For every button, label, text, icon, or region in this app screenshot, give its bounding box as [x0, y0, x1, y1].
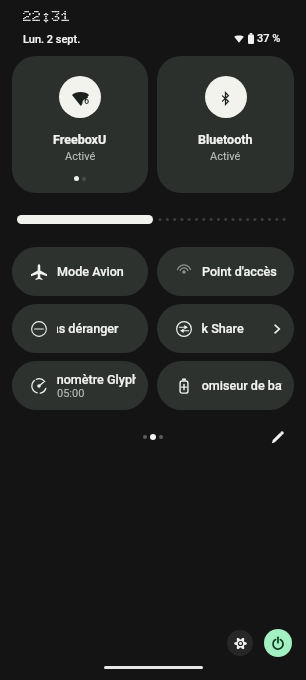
button[interactable]: Bluetooth [157, 56, 294, 193]
button[interactable]: Modifier [266, 427, 288, 447]
button[interactable]: Quick Share [157, 304, 294, 353]
staticText: 6 [84, 96, 90, 107]
staticText: 05:00 [57, 387, 85, 400]
button[interactable]: Paramètres [227, 630, 253, 656]
button[interactable]: Économiseur de batterie [157, 361, 294, 410]
staticText: Quick Share [202, 321, 244, 336]
staticText: 37 % [257, 32, 281, 45]
button[interactable]: Mode Avion [12, 247, 148, 296]
staticText: Mode Avion [57, 264, 124, 279]
button[interactable]: Ne pas déranger [12, 304, 148, 353]
button[interactable]: Éteindre [264, 629, 292, 657]
staticText: Ne pas déranger [57, 321, 119, 336]
button[interactable]: Point d'accès [157, 247, 294, 296]
staticText: Lun. 2 sept. [23, 33, 81, 46]
staticText: Point d'accès [202, 264, 277, 279]
staticText: 22:31 [23, 7, 72, 25]
staticText: FreeboxU [53, 132, 107, 147]
button[interactable]: 6 [12, 56, 148, 193]
staticText: Activé [210, 150, 241, 163]
staticText: Économiseur de batterie [202, 378, 282, 393]
button[interactable]: Chronomètre Glyph [12, 361, 148, 410]
staticText: Activé [65, 150, 96, 163]
staticText: Chronomètre Glyph [57, 372, 136, 387]
staticText: Bluetooth [198, 132, 253, 147]
